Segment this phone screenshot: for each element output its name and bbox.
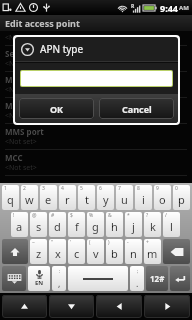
staticText: OK	[50, 103, 64, 115]
staticText: m	[147, 246, 158, 261]
staticText: <Not set>	[5, 137, 37, 147]
staticText: d	[54, 219, 61, 234]
button[interactable]: Right	[144, 295, 190, 318]
button[interactable]: @	[30, 212, 47, 237]
staticText: /	[165, 212, 167, 219]
staticText: h	[111, 219, 118, 234]
button[interactable]: Shift	[2, 239, 28, 264]
button[interactable]: Symbols	[146, 266, 168, 291]
button[interactable]: 4	[59, 185, 76, 210]
button[interactable]: 3	[40, 185, 57, 210]
staticText: v	[93, 246, 99, 261]
staticText: "	[51, 239, 54, 246]
staticText: MMS port	[5, 126, 44, 137]
button[interactable]: 8	[135, 185, 152, 210]
button[interactable]: #	[49, 212, 66, 237]
staticText: 6	[99, 185, 102, 192]
button[interactable]: Enter	[170, 266, 190, 291]
button[interactable]: Input method	[2, 266, 26, 291]
button[interactable]: +	[144, 239, 161, 264]
staticText: '	[70, 239, 72, 246]
staticText: t	[85, 192, 89, 207]
staticText: Edit access point	[5, 17, 80, 29]
button[interactable]: $	[68, 212, 85, 237]
staticText: y	[103, 192, 109, 207]
staticText: c	[74, 246, 80, 261]
staticText: MMS proxy	[5, 100, 50, 111]
button[interactable]: Left	[96, 295, 142, 318]
button[interactable]: -	[125, 239, 142, 264]
staticText: <Not set>	[5, 111, 37, 121]
staticText: 0	[175, 185, 178, 192]
staticText: &	[108, 212, 112, 219]
button[interactable]: ?	[144, 212, 161, 237]
staticText: -	[127, 239, 129, 246]
staticText: EN	[35, 279, 44, 287]
staticText: 5	[80, 185, 83, 192]
staticText: z	[36, 246, 42, 261]
button[interactable]: (	[87, 239, 104, 264]
staticText: #	[51, 212, 55, 219]
staticText: $	[70, 212, 73, 219]
staticText: q	[7, 192, 14, 207]
staticText: Cancel	[122, 103, 152, 115]
staticText: b	[111, 246, 118, 261]
button[interactable]: 9	[154, 185, 171, 210]
button[interactable]: 1	[2, 185, 19, 210]
staticText: :	[59, 268, 61, 275]
button[interactable]: !	[11, 212, 28, 237]
button[interactable]: Up	[2, 295, 47, 318]
staticText: <Not set>	[5, 33, 37, 43]
staticText: f	[75, 219, 79, 234]
button[interactable]: 6	[97, 185, 114, 210]
button[interactable]: Comma	[52, 266, 66, 291]
staticText: APN type	[40, 42, 84, 56]
button[interactable]: Backspace	[163, 239, 190, 264]
staticText: w	[25, 192, 34, 207]
staticText: s	[36, 219, 42, 234]
staticText: 3	[42, 185, 45, 192]
button[interactable]: /	[163, 212, 180, 237]
staticText: n	[130, 246, 137, 261]
staticText: ~	[32, 239, 35, 246]
staticText: *	[127, 212, 130, 219]
staticText: AM	[179, 4, 189, 12]
staticText: R	[131, 3, 135, 10]
staticText: x	[55, 246, 61, 261]
button[interactable]: *	[125, 212, 142, 237]
staticText: l	[170, 219, 173, 234]
staticText: <Not set>	[5, 59, 37, 69]
button[interactable]: 5	[78, 185, 95, 210]
staticText: )	[108, 239, 110, 246]
button[interactable]: 2	[21, 185, 38, 210]
staticText: .	[136, 277, 139, 289]
button[interactable]: Cancel	[99, 98, 174, 119]
button[interactable]: OK	[19, 98, 94, 119]
staticText: 8	[137, 185, 140, 192]
staticText: 12#	[150, 273, 165, 284]
button[interactable]: Period	[130, 266, 144, 291]
staticText: <Not set>	[5, 85, 37, 95]
staticText: j	[132, 219, 135, 234]
staticText: g	[92, 219, 99, 234]
button[interactable]: 7	[116, 185, 133, 210]
staticText: !	[13, 212, 15, 219]
staticText: k	[150, 219, 156, 234]
button[interactable]: Space	[68, 266, 128, 291]
staticText: 9:44	[160, 2, 178, 14]
staticText: ?	[146, 212, 149, 219]
staticText: e	[45, 192, 52, 207]
staticText: p	[178, 192, 185, 207]
button[interactable]: Down	[49, 295, 94, 318]
button[interactable]: &	[106, 212, 123, 237]
button[interactable]: ~	[30, 239, 47, 264]
button[interactable]: 0	[173, 185, 190, 210]
button[interactable]: "	[49, 239, 66, 264]
staticText: MMSC	[5, 74, 30, 85]
button[interactable]: Voice input	[28, 266, 50, 291]
button[interactable]: %	[87, 212, 104, 237]
button[interactable]: '	[68, 239, 85, 264]
button[interactable]: )	[106, 239, 123, 264]
staticText: (	[89, 239, 91, 246]
